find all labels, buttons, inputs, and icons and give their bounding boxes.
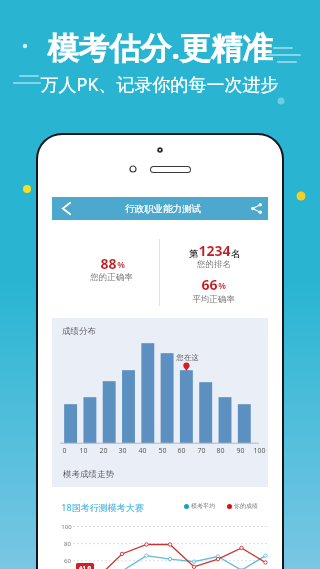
staticText: 40 — [138, 446, 147, 456]
button[interactable]: 18国考行测模考大赛 — [61, 501, 144, 513]
staticText: 88 — [100, 254, 117, 273]
staticText: 100 — [253, 446, 266, 456]
staticText: 80 — [216, 446, 225, 456]
staticText: 1234 — [198, 241, 231, 260]
staticText: 您的排名 — [197, 259, 231, 270]
staticText: % — [218, 280, 226, 292]
staticText: 成绩分布 — [62, 326, 96, 337]
staticText: 70 — [197, 446, 206, 456]
staticText: 0 — [62, 446, 67, 456]
staticText: 90 — [236, 446, 245, 456]
staticText: 20 — [99, 446, 108, 456]
button[interactable] — [52, 220, 159, 317]
button[interactable] — [160, 220, 267, 317]
staticText: 10 — [79, 446, 88, 456]
staticText: 平均正确率 — [192, 294, 235, 305]
staticText: 名 — [231, 248, 240, 259]
staticText: 你的成绩 — [234, 502, 258, 510]
staticText: 行政职业能力测试 — [125, 203, 201, 215]
staticText: 30 — [118, 446, 127, 456]
staticText: 50 — [158, 446, 167, 456]
staticText: 100 — [61, 523, 72, 531]
staticText: 模考平均 — [191, 502, 215, 510]
staticText: 您的正确率 — [90, 272, 133, 283]
staticText: % — [117, 259, 125, 271]
staticText: 80 — [64, 540, 71, 548]
staticText: 66 — [201, 275, 218, 294]
staticText: 模考估分.更精准 — [47, 26, 273, 68]
staticText: 41.0 — [79, 564, 91, 569]
button[interactable]: Back — [54, 197, 78, 220]
staticText: 万人PK、记录你的每一次进步 — [40, 72, 279, 97]
button[interactable]: Share — [245, 197, 268, 220]
staticText: 60 — [177, 446, 186, 456]
staticText: 第 — [189, 248, 198, 259]
staticText: 60 — [64, 557, 71, 565]
staticText: 您在这 — [176, 353, 199, 362]
staticText: 模考成绩走势 — [63, 469, 114, 480]
